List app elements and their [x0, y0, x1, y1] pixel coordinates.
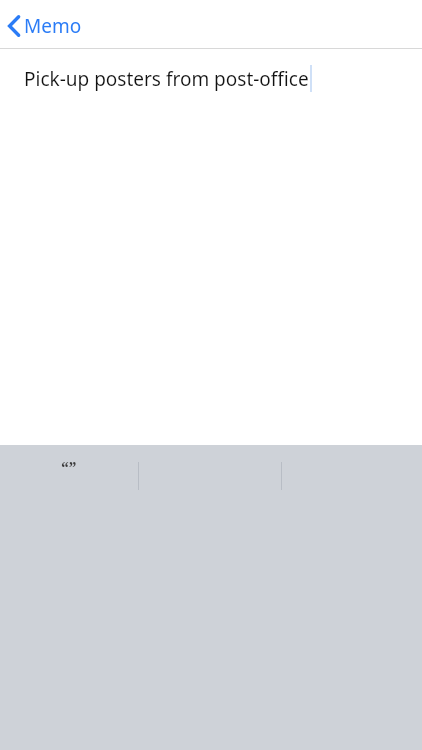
button[interactable]: “”: [40, 453, 98, 483]
button[interactable]: Memo: [0, 9, 92, 43]
staticText: Memo: [24, 13, 82, 39]
staticText: “”: [61, 457, 77, 479]
staticText: Pick-up posters from post-office: [24, 66, 309, 92]
